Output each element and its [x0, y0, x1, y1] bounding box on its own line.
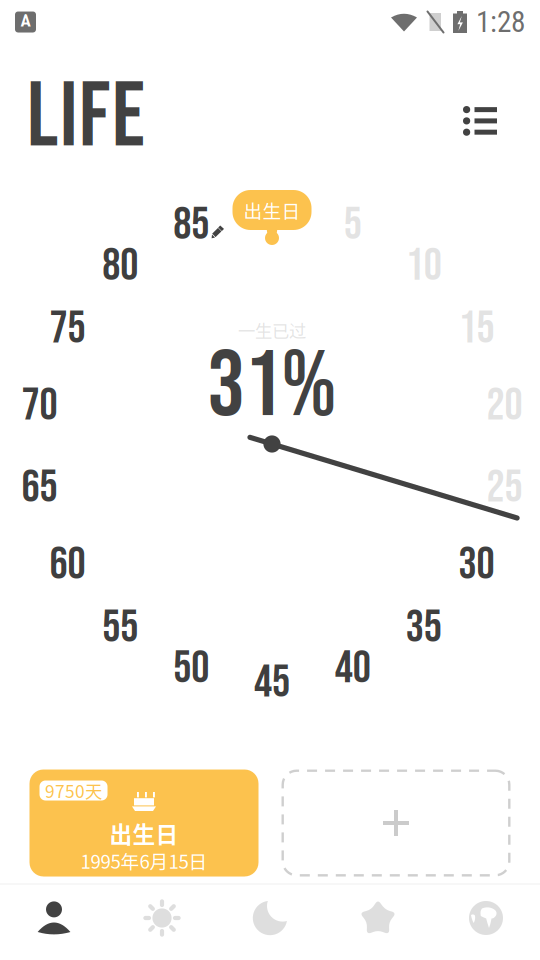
button[interactable]: 出生日 — [232, 190, 312, 246]
staticText: LIFE — [27, 64, 145, 172]
staticText: 35 — [406, 601, 442, 655]
staticText: 15 — [458, 302, 494, 356]
staticText: 55 — [102, 601, 138, 655]
staticText: 30 — [458, 538, 494, 592]
staticText: 出生日 — [243, 196, 300, 223]
button[interactable]: Favorites — [324, 880, 432, 956]
staticText: 60 — [50, 538, 86, 592]
staticText: 一生已过 — [238, 317, 306, 343]
staticText: 45 — [254, 656, 290, 710]
staticText: 75 — [50, 302, 86, 356]
staticText: 70 — [22, 379, 58, 433]
button[interactable]: Profile — [0, 880, 108, 956]
staticText: 5 — [344, 198, 362, 252]
staticText: 40 — [335, 642, 371, 696]
button[interactable]: World — [432, 880, 540, 956]
staticText: 65 — [22, 461, 58, 515]
staticText: 1995年6月15日 — [80, 847, 207, 874]
button[interactable]: Night — [216, 880, 324, 956]
button[interactable]: Add event — [281, 769, 510, 876]
staticText: 10 — [406, 239, 442, 293]
button[interactable]: Day — [108, 880, 216, 956]
staticText: 31% — [207, 331, 336, 443]
staticText: 1:28 — [476, 5, 525, 39]
staticText: 出生日 — [109, 817, 178, 849]
staticText: 80 — [102, 239, 138, 293]
staticText: 9750天 — [45, 778, 102, 803]
staticText: 25 — [486, 461, 522, 515]
staticText: 50 — [173, 642, 209, 696]
button[interactable]: List — [449, 92, 511, 150]
staticText: A — [20, 10, 30, 31]
staticText: 20 — [486, 379, 522, 433]
button[interactable]: 出生日 — [29, 769, 258, 876]
staticText: 85 — [173, 198, 209, 252]
